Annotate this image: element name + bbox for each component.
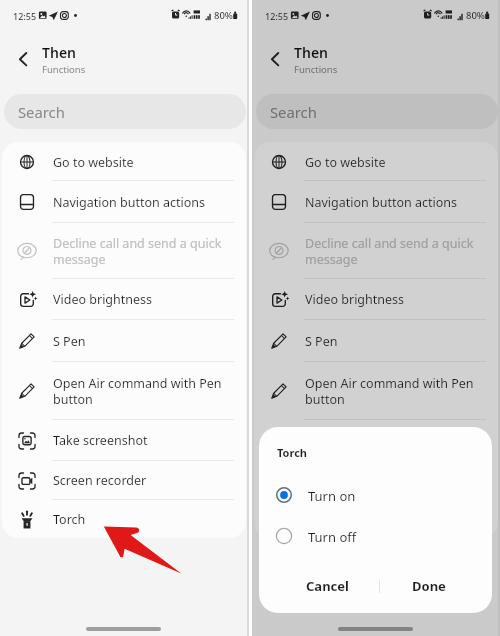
staticText: Open Air command with Pen button: [305, 375, 483, 407]
staticText: Search: [270, 102, 317, 122]
button[interactable]: Done: [384, 570, 474, 602]
staticText: Go to website: [53, 154, 231, 171]
staticText: S Pen: [305, 333, 483, 350]
button[interactable]: Video brightness: [2, 278, 246, 319]
staticText: Search: [18, 102, 65, 122]
button[interactable]: Navigation button actions: [2, 180, 246, 222]
staticText: Cancel: [306, 577, 349, 595]
staticText: Done: [412, 577, 446, 595]
staticText: 80%: [466, 9, 485, 22]
button[interactable]: Go to website: [254, 142, 498, 180]
button[interactable]: Go to website: [2, 142, 246, 180]
button[interactable]: Open Air command with Pen button: [254, 361, 498, 419]
staticText: Navigation button actions: [53, 194, 231, 211]
staticText: Video brightness: [53, 291, 231, 308]
staticText: 12:55: [265, 10, 289, 22]
button[interactable]: Back: [9, 44, 39, 74]
button[interactable]: Take screenshot: [2, 419, 246, 460]
staticText: 80%: [214, 9, 233, 22]
button[interactable]: Navigation button actions: [254, 180, 498, 222]
button[interactable]: Turn on: [259, 479, 492, 511]
staticText: Functions: [42, 63, 86, 76]
button[interactable]: Video brightness: [254, 278, 498, 319]
button[interactable]: S Pen: [2, 319, 246, 361]
staticText: 12:55: [13, 10, 37, 22]
staticText: Open Air command with Pen button: [53, 375, 231, 407]
staticText: Turn on: [308, 487, 356, 505]
button[interactable]: Search: [4, 94, 246, 129]
button[interactable]: Decline call and send a quick message: [2, 222, 246, 278]
button[interactable]: Screen recorder: [2, 460, 246, 499]
staticText: Decline call and send a quick message: [53, 235, 231, 267]
button[interactable]: Turn off: [259, 520, 492, 552]
button[interactable]: Open Air command with Pen button: [2, 361, 246, 419]
staticText: Screen recorder: [53, 472, 231, 489]
button[interactable]: Screen recorder: [254, 460, 498, 499]
button[interactable]: Search: [256, 94, 498, 129]
button[interactable]: Take screenshot: [254, 419, 498, 460]
staticText: Video brightness: [305, 291, 483, 308]
button[interactable]: Torch: [2, 499, 246, 538]
staticText: S Pen: [53, 333, 231, 350]
staticText: Take screenshot: [53, 432, 231, 449]
staticText: Torch: [277, 445, 307, 460]
staticText: Then: [294, 43, 329, 62]
staticText: Turn off: [308, 528, 357, 546]
staticText: Decline call and send a quick message: [305, 235, 483, 267]
staticText: Then: [42, 43, 77, 62]
staticText: Functions: [294, 63, 338, 76]
button[interactable]: Torch: [254, 499, 498, 538]
button[interactable]: S Pen: [254, 319, 498, 361]
button[interactable]: Cancel: [278, 570, 376, 602]
staticText: Torch: [53, 511, 231, 528]
staticText: Go to website: [305, 154, 483, 171]
button[interactable]: Decline call and send a quick message: [254, 222, 498, 278]
staticText: Navigation button actions: [305, 194, 483, 211]
button[interactable]: Back: [261, 44, 291, 74]
